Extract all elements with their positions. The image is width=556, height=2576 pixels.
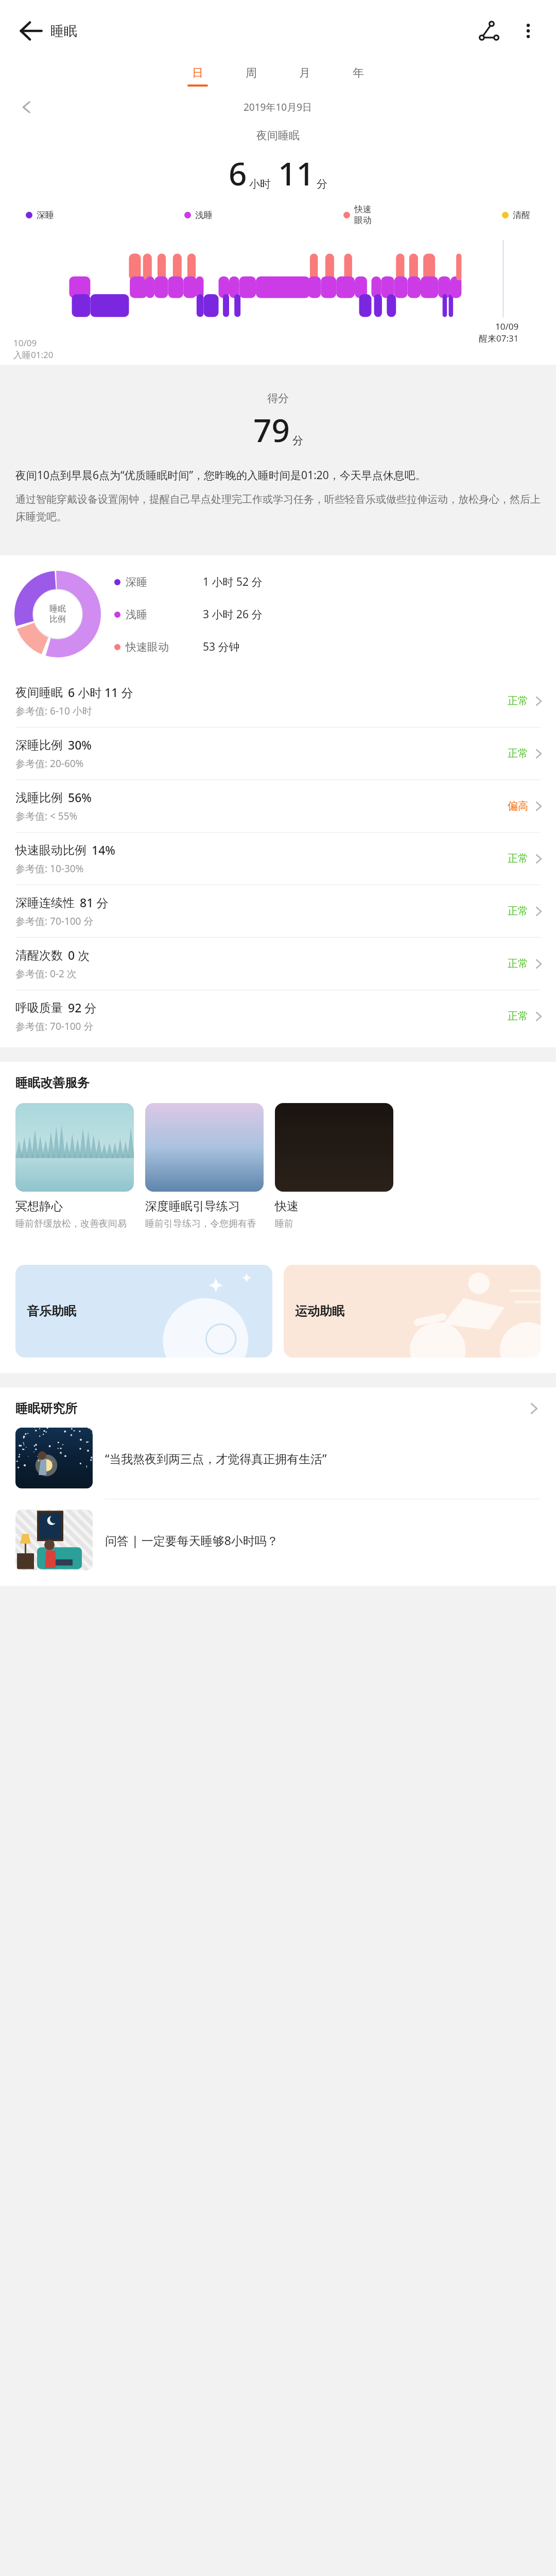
staticText: 入睡01:20 (13, 349, 54, 361)
staticText: 睡前引导练习，令您拥有香甜… (145, 1218, 264, 1230)
button[interactable]: 冥想静心 (15, 1103, 134, 1230)
staticText: 81 分 (80, 894, 109, 910)
staticText: 冥想静心 (15, 1199, 63, 1214)
staticText: 快速 (354, 204, 372, 215)
staticText: 6 (229, 151, 247, 195)
staticText: 参考值: 10-30% (15, 862, 84, 875)
button[interactable]: 月 (294, 64, 315, 89)
staticText: 深睡比例 (15, 738, 63, 753)
staticText: 快速眼动比例 (15, 843, 86, 858)
staticText: 快速眼动 (126, 640, 169, 654)
button[interactable]: 快速眼动比例 (0, 833, 556, 885)
staticText: “当我熬夜到两三点，才觉得真正拥有生活” (105, 1450, 327, 1466)
staticText: 30% (68, 737, 92, 753)
staticText: 参考值: 70-100 分 (15, 1020, 94, 1033)
button[interactable]: 深睡连续性 (0, 885, 556, 937)
staticText: 夜间睡眠 (256, 129, 300, 142)
staticText: 10/09 (495, 320, 519, 332)
staticText: 清醒次数 (15, 948, 63, 963)
staticText: 通过智能穿戴设备设置闹钟，提醒自己早点处理完工作或学习任务，听些轻音乐或做些拉伸… (15, 493, 541, 523)
button[interactable]: 深睡比例 (0, 727, 556, 779)
button[interactable]: 问答 | 一定要每天睡够8小时吗？ (0, 1510, 556, 1570)
staticText: 深睡 (126, 575, 147, 589)
staticText: 问答 | 一定要每天睡够8小时吗？ (105, 1532, 279, 1548)
button[interactable]: Previous day (11, 92, 42, 123)
staticText: 醒来07:31 (479, 332, 519, 344)
staticText: 正常 (508, 694, 528, 707)
button[interactable]: 清醒次数 (0, 938, 556, 990)
button[interactable]: 年 (348, 64, 369, 89)
staticText: 睡前 (275, 1218, 293, 1230)
staticText: 参考值: 0-2 次 (15, 967, 77, 980)
staticText: 睡眠研究所 (15, 1401, 77, 1416)
staticText: 10/09 (13, 337, 37, 349)
staticText: 比例 (49, 614, 66, 624)
staticText: 浅睡 (195, 210, 213, 221)
staticText: 参考值: 20-60% (15, 757, 84, 770)
staticText: 浅睡比例 (15, 790, 63, 805)
button[interactable]: 夜间睡眠 (0, 675, 556, 727)
staticText: 眼动 (354, 215, 372, 226)
staticText: 53 分钟 (203, 639, 240, 654)
staticText: 夜间睡眠 (15, 685, 63, 700)
staticText: 正常 (508, 852, 528, 865)
button[interactable]: Back (11, 11, 50, 50)
button[interactable]: 呼吸质量 (0, 990, 556, 1042)
button[interactable]: 周 (241, 64, 262, 89)
staticText: 3 小时 26 分 (203, 607, 263, 622)
staticText: 深睡连续性 (15, 895, 75, 910)
button[interactable]: 睡眠研究所 (0, 1401, 556, 1416)
staticText: 6 小时 11 分 (68, 684, 133, 700)
staticText: 参考值: 6-10 小时 (15, 704, 92, 718)
staticText: 深睡 (37, 210, 54, 221)
staticText: 92 分 (68, 999, 97, 1015)
staticText: 睡眠 (50, 23, 77, 40)
staticText: 正常 (508, 747, 528, 760)
staticText: 79 (253, 408, 290, 451)
button[interactable]: 深度睡眠引导练习 (145, 1103, 264, 1230)
staticText: 音乐助眠 (27, 1303, 76, 1319)
staticText: 月 (299, 66, 310, 80)
staticText: 日 (192, 66, 203, 80)
staticText: 1 小时 52 分 (203, 574, 263, 589)
staticText: 得分 (267, 392, 289, 405)
button[interactable]: 日 (187, 64, 208, 89)
staticText: 偏高 (508, 800, 528, 812)
staticText: 清醒 (513, 210, 530, 221)
staticText: 56% (68, 789, 92, 805)
staticText: 年 (353, 66, 364, 80)
staticText: 正常 (508, 1010, 528, 1023)
staticText: 2019年10月9日 (244, 100, 312, 114)
staticText: 小时 (249, 177, 271, 191)
button[interactable]: 音乐助眠 (15, 1265, 272, 1358)
staticText: 11 (278, 151, 315, 195)
staticText: 周 (246, 66, 257, 80)
staticText: 浅睡 (126, 608, 147, 621)
staticText: 睡眠改善服务 (15, 1075, 90, 1091)
button[interactable]: “当我熬夜到两三点，才觉得真正拥有生活” (0, 1428, 556, 1488)
staticText: 14% (92, 842, 115, 858)
staticText: 睡前舒缓放松，改善夜间易醒 (15, 1218, 134, 1230)
staticText: 睡眠 (49, 604, 66, 614)
staticText: 快速 (275, 1199, 299, 1214)
staticText: 0 次 (68, 947, 90, 963)
staticText: 参考值: 70-100 分 (15, 914, 94, 928)
staticText: 正常 (508, 957, 528, 970)
staticText: 正常 (508, 905, 528, 918)
button[interactable]: 快速 (275, 1103, 393, 1230)
staticText: 夜间10点到早晨6点为“优质睡眠时间”，您昨晚的入睡时间是01:20，今天早点休… (15, 468, 426, 483)
staticText: 运动助眠 (295, 1303, 344, 1319)
button[interactable]: 浅睡比例 (0, 780, 556, 832)
staticText: 分 (317, 177, 327, 191)
staticText: 深度睡眠引导练习 (145, 1199, 240, 1214)
button[interactable]: Share (470, 11, 509, 50)
button[interactable]: More options (509, 11, 548, 50)
staticText: 参考值: < 55% (15, 809, 78, 823)
staticText: 呼吸质量 (15, 1001, 63, 1015)
staticText: 分 (292, 434, 303, 447)
button[interactable]: 运动助眠 (284, 1265, 541, 1358)
